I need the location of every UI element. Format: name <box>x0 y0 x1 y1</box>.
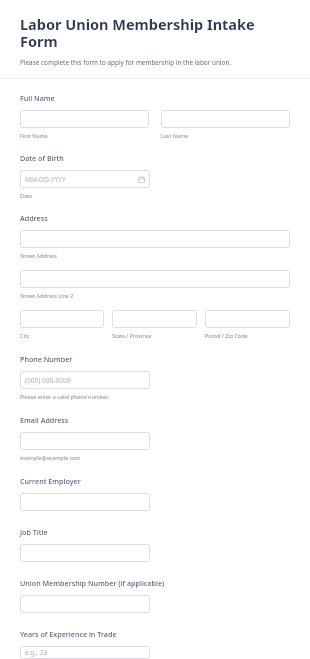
staticText: Phone Number <box>20 354 73 364</box>
button[interactable] <box>205 310 290 328</box>
staticText: Current Employer <box>20 476 81 486</box>
staticText: e.g., 23 <box>25 648 145 657</box>
staticText: Date of Birth <box>20 153 64 163</box>
staticText: Job Title <box>20 527 48 537</box>
button[interactable] <box>20 270 290 288</box>
button[interactable] <box>20 432 150 450</box>
staticText: example@example.com <box>20 454 81 461</box>
staticText: Postal / Zip Code <box>205 332 290 339</box>
staticText: Email Address <box>20 415 69 425</box>
button[interactable] <box>161 110 290 128</box>
staticText: Date <box>20 192 32 199</box>
staticText: Street Address <box>20 252 57 259</box>
staticText: Please enter a valid phone number. <box>20 393 109 400</box>
button[interactable] <box>20 310 104 328</box>
staticText: MM-DD-YYYY <box>25 175 138 184</box>
button[interactable] <box>20 595 150 613</box>
staticText: Labor Union Membership Intake Form <box>20 14 290 51</box>
staticText: Last Name <box>161 132 290 139</box>
button[interactable]: e.g., 23 <box>20 646 150 659</box>
staticText: State / Province <box>112 332 197 339</box>
other: Pick date <box>138 176 145 183</box>
button[interactable]: (000) 000-0000 <box>20 371 150 389</box>
staticText: Years of Experience in Trade <box>20 629 117 639</box>
button[interactable] <box>20 493 150 511</box>
staticText: City <box>20 332 104 339</box>
button[interactable] <box>20 110 149 128</box>
staticText: Union Membership Number (if applicable) <box>20 578 165 588</box>
button[interactable] <box>112 310 197 328</box>
staticText: Street Address Line 2 <box>20 292 74 299</box>
staticText: (000) 000-0000 <box>25 376 145 385</box>
staticText: First Name <box>20 132 149 139</box>
button[interactable]: MM-DD-YYYY <box>20 170 150 188</box>
button[interactable] <box>20 544 150 562</box>
staticText: Address <box>20 213 48 223</box>
staticText: Full Name <box>20 93 55 103</box>
staticText: Please complete this form to apply for m… <box>20 58 232 67</box>
button[interactable] <box>20 230 290 248</box>
